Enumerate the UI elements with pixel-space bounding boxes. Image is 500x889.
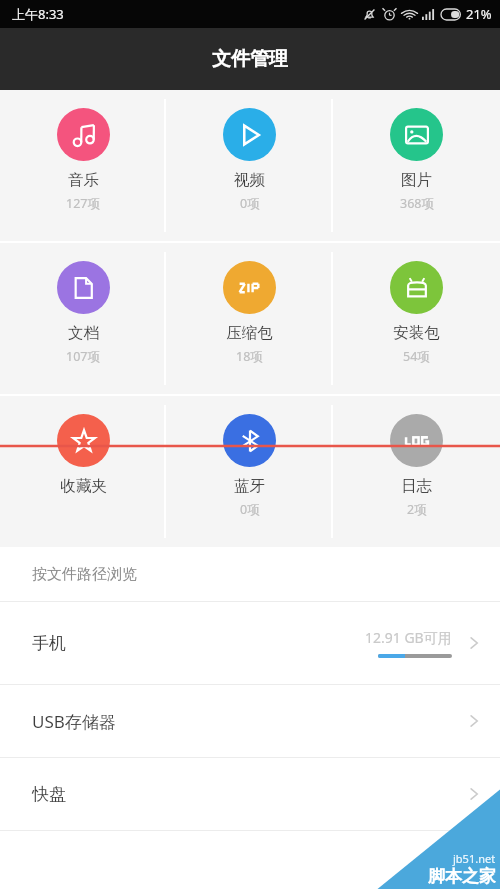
staticText: 手机 bbox=[32, 633, 66, 654]
button[interactable]: 手机 bbox=[0, 602, 500, 684]
staticText: 蓝牙 bbox=[234, 476, 265, 496]
button[interactable]: 图片 bbox=[333, 90, 500, 241]
staticText: 压缩包 bbox=[226, 323, 273, 343]
staticText: 音乐 bbox=[68, 170, 99, 190]
button[interactable]: 文档 bbox=[0, 243, 166, 394]
staticText: 收藏夹 bbox=[60, 476, 107, 496]
staticText: USB存储器 bbox=[32, 710, 116, 733]
staticText: 图片 bbox=[401, 170, 432, 190]
staticText: 18项 bbox=[236, 348, 263, 365]
staticText: 21% bbox=[466, 5, 492, 23]
staticText: 12.91 GB可用 bbox=[365, 628, 452, 647]
staticText: 脚本之家 bbox=[428, 866, 496, 887]
button[interactable]: 安装包 bbox=[333, 243, 500, 394]
button[interactable]: 音乐 bbox=[0, 90, 166, 241]
button[interactable]: 收藏夹 bbox=[0, 396, 166, 547]
staticText: 0项 bbox=[240, 501, 260, 518]
button[interactable]: 视频 bbox=[166, 90, 333, 241]
button[interactable]: 日志 bbox=[333, 396, 500, 547]
staticText: 上午8:33 bbox=[12, 5, 64, 23]
staticText: 2项 bbox=[407, 501, 427, 518]
button[interactable]: USB存储器 bbox=[0, 685, 500, 757]
staticText: 按文件路径浏览 bbox=[32, 565, 137, 584]
button[interactable]: 快盘 bbox=[0, 758, 500, 830]
staticText: 日志 bbox=[401, 476, 432, 496]
staticText: 368项 bbox=[400, 195, 434, 212]
staticText: 文件管理 bbox=[212, 47, 288, 71]
staticText: 107项 bbox=[66, 348, 100, 365]
staticText: 安装包 bbox=[393, 323, 440, 343]
staticText: 0项 bbox=[240, 195, 260, 212]
button[interactable]: 蓝牙 bbox=[166, 396, 333, 547]
staticText: 快盘 bbox=[32, 784, 66, 805]
staticText: 视频 bbox=[234, 170, 265, 190]
staticText: 54项 bbox=[403, 348, 430, 365]
staticText: 127项 bbox=[66, 195, 100, 212]
button[interactable]: 压缩包 bbox=[166, 243, 333, 394]
staticText: 文档 bbox=[68, 323, 99, 343]
staticText: jb51.net bbox=[453, 851, 496, 866]
